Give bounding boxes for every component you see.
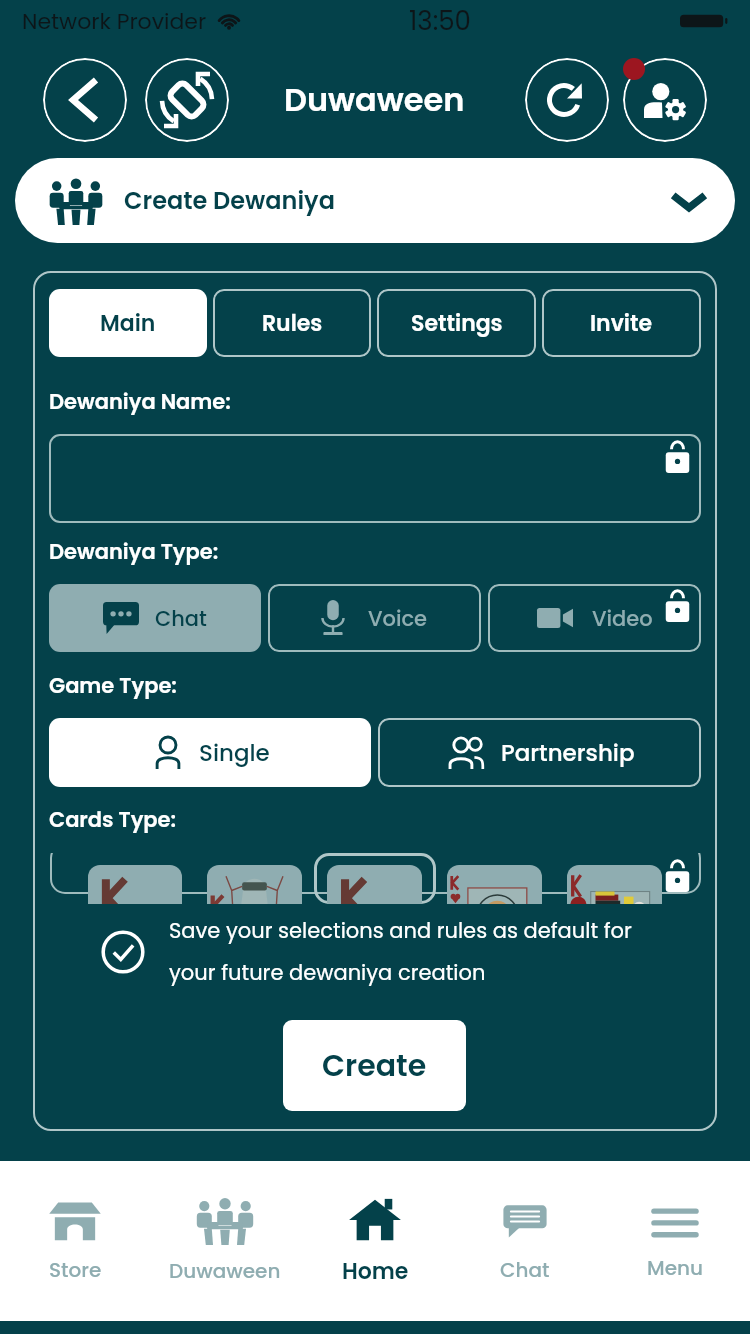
button[interactable] [49,434,701,523]
staticText: Dewaniya Type: [49,537,219,566]
button[interactable]: Refresh [525,58,609,142]
staticText: Chat [155,604,207,633]
button[interactable]: Video [488,584,701,652]
staticText: Chat [500,1256,550,1284]
button[interactable]: Save your selections and rules as defaul… [49,916,701,987]
staticText: Rules [262,308,323,339]
button[interactable]: Home [300,1161,450,1321]
staticText: Invite [590,308,653,339]
staticText: Partnership [501,737,635,769]
staticText: Network Provider [22,6,207,37]
staticText: Game Type: [49,671,177,700]
button[interactable]: Partnership [378,718,701,787]
staticText: Voice [368,604,428,633]
staticText: Create [322,1045,427,1087]
staticText: 13:50 [409,3,471,39]
staticText: Settings [411,308,503,339]
staticText: Save your selections and rules as defaul… [169,916,649,987]
staticText: Main [100,308,156,339]
button[interactable]: Manage account [623,58,707,142]
button[interactable]: Menu [600,1161,750,1321]
button[interactable]: Create [283,1020,466,1111]
staticText: Duwaween [169,1257,281,1285]
button[interactable] [207,865,302,904]
button[interactable]: Rules [213,289,371,357]
staticText: Dewaniya Name: [49,387,231,416]
button[interactable]: Voice [268,584,481,652]
button[interactable]: Create Dewaniya [15,158,735,243]
staticText: Duwaween [284,77,465,122]
button[interactable]: Chat [49,584,261,652]
staticText: Store [49,1256,102,1284]
staticText: Cards Type: [49,805,177,834]
staticText: Video [592,604,653,633]
button[interactable]: Duwaween [150,1161,300,1321]
staticText: Create Dewaniya [124,184,335,218]
button[interactable] [567,865,662,904]
staticText: Single [199,737,270,769]
button[interactable] [327,865,422,904]
button[interactable]: Rotate screen [145,58,229,142]
button[interactable] [447,865,542,904]
button[interactable]: Main [49,289,207,357]
button[interactable] [88,865,182,904]
button[interactable]: Single [49,718,371,787]
button[interactable]: Settings [377,289,536,357]
button[interactable]: Chat [450,1161,600,1321]
staticText: Menu [647,1254,703,1282]
staticText: Home [342,1256,409,1287]
button[interactable]: Store [0,1161,150,1321]
button[interactable]: Invite [542,289,701,357]
button[interactable]: Back [43,58,127,142]
